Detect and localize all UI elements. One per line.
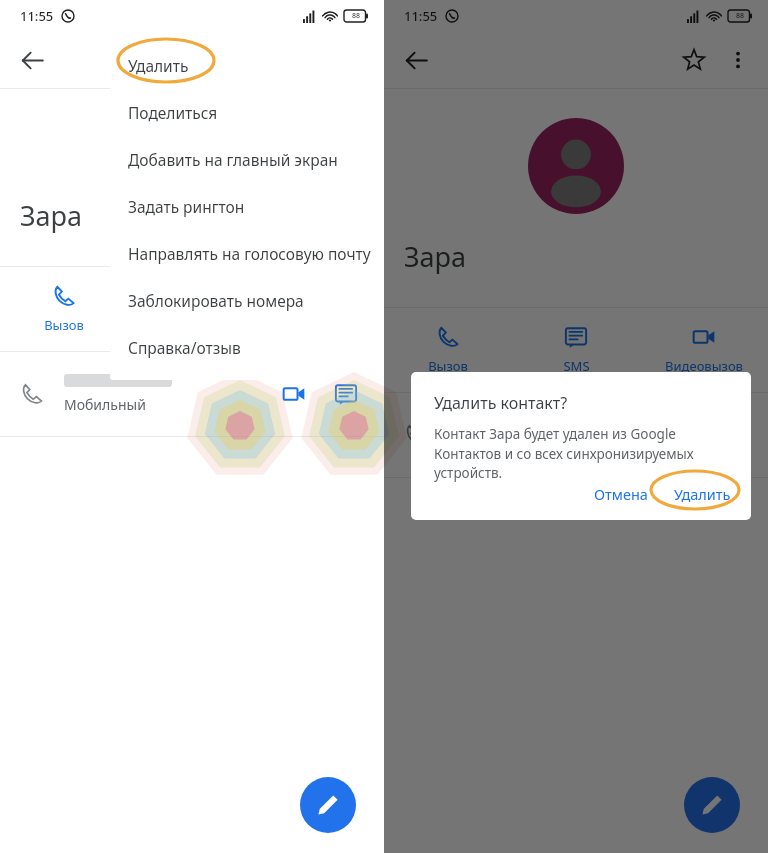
button[interactable]: Вызов <box>384 308 512 392</box>
staticText: Удалить контакт? <box>434 392 568 414</box>
button[interactable]: Вызов <box>0 267 128 351</box>
staticText: Вызов <box>44 316 84 334</box>
staticText: Поделиться <box>128 102 218 123</box>
staticText: Мобильный <box>64 395 146 414</box>
staticText: Вызов <box>428 357 468 375</box>
staticText: Удалить <box>674 484 731 504</box>
button[interactable]: Back <box>394 38 438 82</box>
staticText: Добавить на главный экран <box>128 149 338 170</box>
button[interactable]: SMS <box>512 308 640 392</box>
button[interactable]: Удалить <box>110 42 384 89</box>
button[interactable]: Видеовызов <box>640 308 768 392</box>
staticText: Зара <box>404 238 467 275</box>
button[interactable]: Video call <box>270 370 318 418</box>
button[interactable]: Направлять на голосовую почту <box>110 230 384 277</box>
button[interactable]: Задать рингтон <box>110 183 384 230</box>
staticText: Отмена <box>594 484 648 504</box>
button[interactable]: Поделиться <box>110 89 384 136</box>
staticText: Справка/отзыв <box>128 337 241 358</box>
staticText: 88 <box>736 11 745 21</box>
staticText: Задать рингтон <box>128 196 245 217</box>
staticText: 11:55 <box>20 7 54 25</box>
staticText: 88 <box>352 11 361 21</box>
button[interactable]: More options <box>716 38 760 82</box>
button[interactable]: Add to favourites <box>672 38 716 82</box>
staticText: Видеовызов <box>665 357 743 375</box>
button[interactable]: Мобильный <box>0 352 384 436</box>
button[interactable]: Видеовызов <box>256 267 384 351</box>
button[interactable]: Back <box>10 38 54 82</box>
staticText: Заблокировать номера <box>128 290 304 311</box>
staticText: 11:55 <box>404 7 438 25</box>
button[interactable]: Удалить <box>664 476 741 512</box>
staticText: Контакт Зара будет удален из Google Конт… <box>434 425 733 482</box>
button[interactable]: Отмена <box>584 476 658 512</box>
staticText: Зара <box>20 197 83 234</box>
staticText: Мобильный <box>448 436 530 455</box>
button[interactable]: Edit contact <box>300 777 356 833</box>
staticText: Направлять на голосовую почту <box>128 243 371 264</box>
button[interactable]: Send message <box>322 370 370 418</box>
button[interactable]: SMS <box>128 267 256 351</box>
staticText: SMS <box>563 357 590 375</box>
button[interactable]: Edit contact <box>684 777 740 833</box>
staticText: Удалить <box>128 55 189 76</box>
button[interactable]: Заблокировать номера <box>110 277 384 324</box>
button[interactable]: Добавить на главный экран <box>110 136 384 183</box>
button[interactable]: Справка/отзыв <box>110 324 384 371</box>
